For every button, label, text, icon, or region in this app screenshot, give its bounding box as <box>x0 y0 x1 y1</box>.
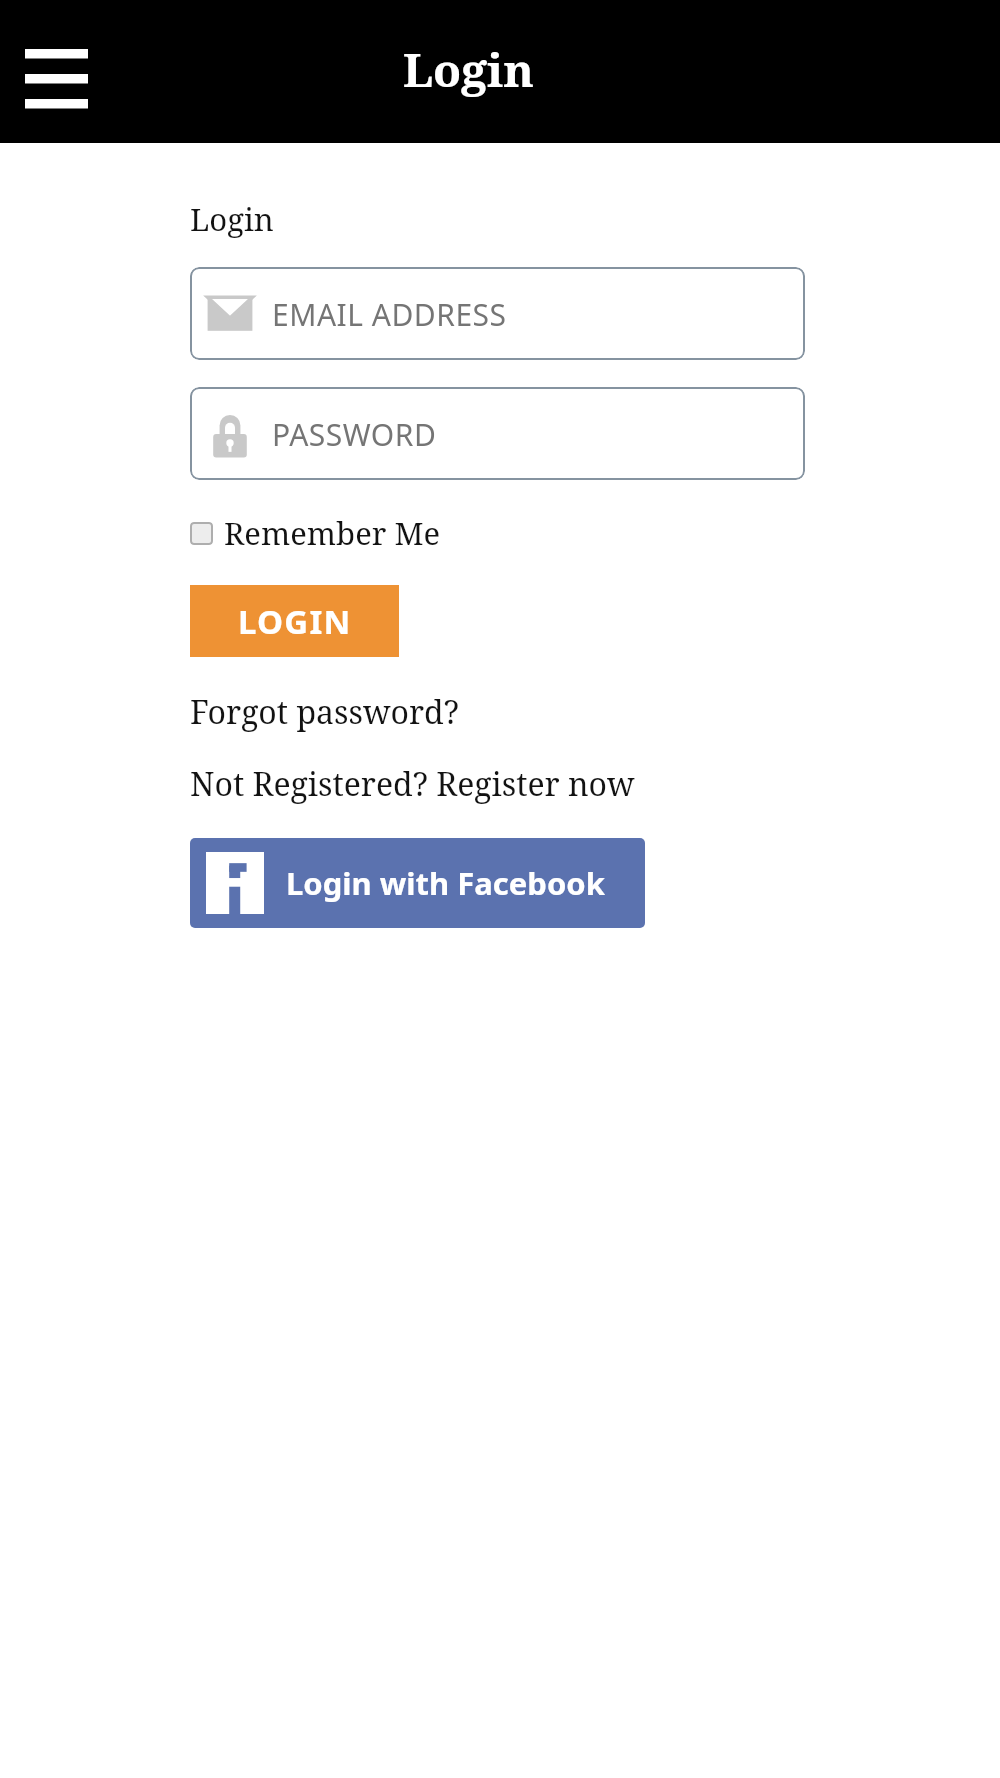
button[interactable]: PASSWORD <box>190 387 805 480</box>
button[interactable]: EMAIL ADDRESS <box>190 267 805 360</box>
button[interactable]: Remember Me <box>190 512 449 554</box>
staticText: EMAIL ADDRESS <box>272 294 507 335</box>
button[interactable]: Not Registered? Register now <box>190 762 635 806</box>
button[interactable]: Login with Facebook <box>190 838 645 928</box>
staticText: Login <box>190 198 274 240</box>
staticText: Login <box>403 38 534 101</box>
staticText: Forgot password? <box>190 690 459 734</box>
staticText: Remember Me <box>224 512 441 554</box>
staticText: LOGIN <box>238 599 352 644</box>
button[interactable]: Forgot password? <box>190 690 459 734</box>
staticText: Not Registered? Register now <box>190 762 635 806</box>
button[interactable]: Open navigation menu <box>18 36 96 108</box>
staticText: PASSWORD <box>272 414 437 455</box>
button[interactable]: LOGIN <box>190 585 399 657</box>
staticText: Login with Facebook <box>286 862 605 904</box>
